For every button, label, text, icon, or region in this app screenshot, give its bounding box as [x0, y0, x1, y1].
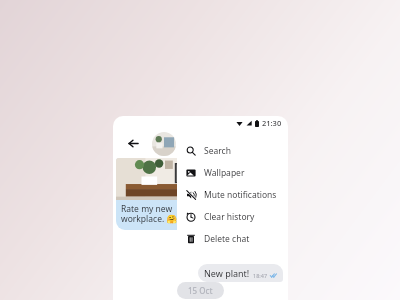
staticText: 18:47 — [253, 272, 268, 279]
button[interactable]: Rate my new workplace. 🤗 — [116, 158, 214, 230]
staticText: 15 Oct — [188, 285, 213, 296]
staticText: Delete chat — [204, 233, 250, 245]
staticText: Search — [204, 145, 231, 157]
button[interactable]: Back — [120, 130, 147, 157]
staticText: Clear history — [204, 211, 255, 223]
button[interactable]: Delete chat — [177, 228, 282, 250]
button[interactable]: Contact avatar — [152, 132, 176, 156]
staticText: 21:30 — [262, 118, 282, 128]
staticText: Wallpaper — [204, 167, 245, 179]
button[interactable]: Wallpaper — [177, 162, 282, 184]
button[interactable]: Search — [177, 140, 282, 162]
button[interactable]: Mute notifications — [177, 184, 282, 206]
button[interactable]: 15 Oct — [177, 282, 224, 299]
staticText: Rate my new workplace. 🤗 — [121, 203, 178, 225]
staticText: Mute notifications — [204, 189, 277, 201]
button[interactable]: Clear history — [177, 206, 282, 228]
button[interactable]: New plant! — [198, 264, 283, 282]
staticText: New plant! — [204, 267, 250, 279]
